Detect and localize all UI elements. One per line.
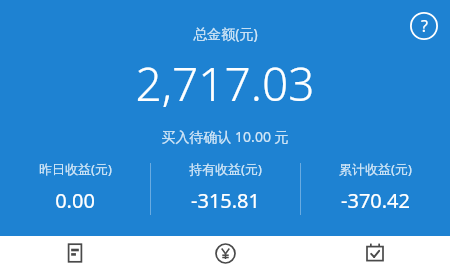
staticText: -370.42 [341, 187, 410, 214]
staticText: 2,717.03 [135, 52, 315, 115]
button[interactable]: 累计收益(元) [301, 160, 450, 214]
button[interactable]: 持有收益(元) [151, 160, 300, 214]
staticText: 昨日收益(元) [39, 160, 112, 178]
staticText: -315.81 [191, 187, 260, 214]
staticText: ? [421, 15, 428, 37]
button[interactable]: 昨日收益(元) [0, 160, 150, 214]
staticText: 累计收益(元) [339, 160, 412, 178]
button[interactable]: Help [410, 12, 438, 40]
staticText: 买入待确认 10.00 元 [161, 127, 289, 146]
button[interactable]: Funds [150, 236, 300, 270]
button[interactable]: Records [0, 236, 150, 270]
button[interactable]: Calendar [300, 236, 450, 270]
staticText: 持有收益(元) [189, 160, 262, 178]
staticText: 总金额(元) [193, 24, 258, 43]
staticText: 0.00 [55, 187, 95, 214]
